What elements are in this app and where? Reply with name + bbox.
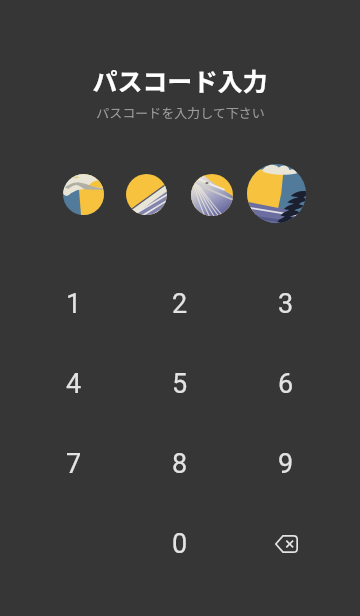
button[interactable]: 2 xyxy=(127,264,233,344)
button[interactable]: 8 xyxy=(127,424,233,504)
staticText: パスコードを入力して下さい xyxy=(96,103,265,122)
staticText: 6 xyxy=(278,368,294,400)
staticText: 3 xyxy=(278,288,294,320)
other: Delete xyxy=(275,535,298,553)
staticText: 4 xyxy=(66,368,82,400)
button[interactable]: 3 xyxy=(233,264,339,344)
staticText: 8 xyxy=(172,448,188,480)
staticText: パスコード入力 xyxy=(92,62,268,98)
button[interactable]: 0 xyxy=(127,504,233,584)
staticText: 2 xyxy=(172,288,188,320)
button[interactable]: 7 xyxy=(21,424,127,504)
staticText: 5 xyxy=(172,368,188,400)
staticText: 0 xyxy=(172,528,188,560)
staticText: 7 xyxy=(66,448,82,480)
button[interactable]: 4 xyxy=(21,344,127,424)
staticText: 1 xyxy=(66,288,82,320)
staticText: 9 xyxy=(278,448,294,480)
button[interactable]: 5 xyxy=(127,344,233,424)
button[interactable]: 9 xyxy=(233,424,339,504)
button[interactable]: Delete xyxy=(233,504,339,584)
button[interactable]: 6 xyxy=(233,344,339,424)
button[interactable]: 1 xyxy=(21,264,127,344)
